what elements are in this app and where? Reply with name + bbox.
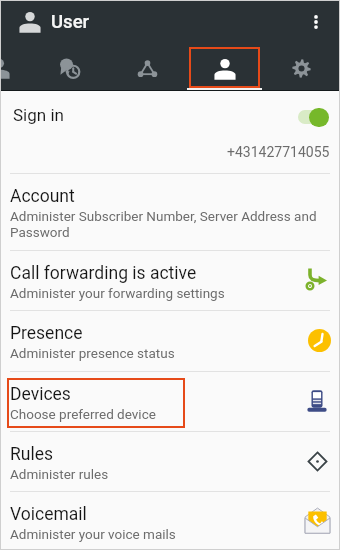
staticText: Voicemail: [10, 504, 87, 525]
staticText: Administer presence status: [10, 345, 322, 361]
staticText: Rules: [10, 444, 53, 465]
button[interactable]: Voicemail: [0, 492, 340, 550]
staticText: Administer Subscriber Number, Server Add…: [10, 208, 322, 240]
button[interactable]: More options: [300, 6, 332, 38]
button[interactable]: Call forwarding is active: [0, 251, 340, 310]
staticText: User: [51, 11, 90, 33]
button[interactable]: Groups: [109, 43, 186, 90]
staticText: Sign in: [13, 105, 64, 125]
button[interactable]: Settings: [263, 43, 340, 90]
staticText: Administer your forwarding settings: [10, 285, 322, 301]
staticText: Presence: [10, 323, 83, 344]
staticText: Account: [10, 186, 75, 207]
staticText: Administer your voice mails: [10, 526, 322, 542]
staticText: Administer rules: [10, 466, 322, 482]
staticText: Choose preferred device: [10, 406, 322, 422]
staticText: Devices: [10, 384, 71, 405]
button[interactable]: Sign in: [0, 91, 340, 173]
button[interactable]: Rules: [0, 432, 340, 491]
button[interactable]: Account: [0, 174, 340, 250]
staticText: Call forwarding is active: [10, 263, 197, 284]
button[interactable]: Profile: [186, 43, 263, 90]
staticText: +431427714055: [227, 144, 330, 160]
button[interactable]: Recent calls: [32, 43, 109, 90]
button[interactable]: Devices: [0, 372, 340, 431]
button[interactable]: Presence: [0, 311, 340, 371]
button[interactable]: Contacts: [0, 43, 32, 90]
